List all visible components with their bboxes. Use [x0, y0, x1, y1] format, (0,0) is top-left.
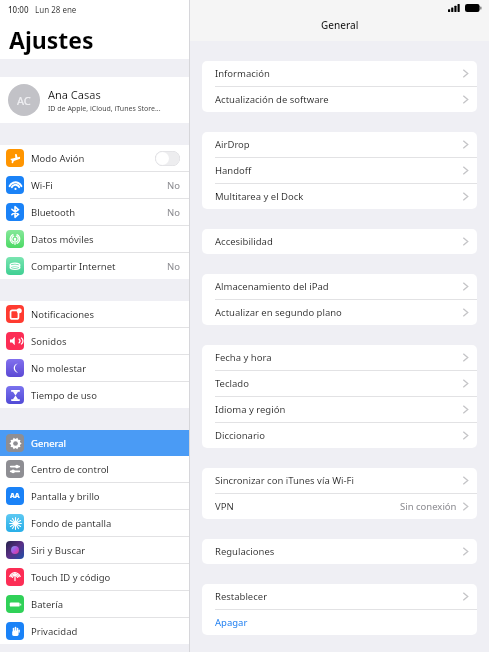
staticText: Accesibilidad — [215, 235, 463, 248]
button[interactable]: Datos móviles — [0, 226, 189, 252]
button[interactable]: Información — [202, 61, 477, 86]
staticText: Teclado — [215, 377, 463, 390]
staticText: Almacenamiento del iPad — [215, 280, 463, 293]
button[interactable]: Batería — [0, 591, 189, 617]
button[interactable]: AirDrop — [202, 132, 477, 157]
staticText: Regulaciones — [215, 545, 463, 558]
button[interactable]: Wi-Fi — [0, 172, 189, 198]
staticText: Fondo de pantalla — [31, 517, 180, 530]
button[interactable]: No molestar — [0, 355, 189, 381]
staticText: AA — [10, 491, 20, 501]
other: Batería — [465, 4, 482, 12]
staticText: No molestar — [31, 362, 180, 375]
staticText: Wi-Fi — [31, 179, 167, 192]
button[interactable]: Compartir Internet — [0, 253, 189, 279]
button[interactable]: Bluetooth — [0, 199, 189, 225]
staticText: Siri y Buscar — [31, 544, 180, 557]
staticText: No — [167, 206, 180, 219]
staticText: Ana Casas — [48, 87, 101, 102]
button[interactable]: Privacidad — [0, 618, 189, 644]
staticText: Multitarea y el Dock — [215, 190, 463, 203]
button[interactable]: Fondo de pantalla — [0, 510, 189, 536]
staticText: Compartir Internet — [31, 260, 167, 273]
button[interactable]: Tiempo de uso — [0, 382, 189, 408]
staticText: Actualizar en segundo plano — [215, 306, 463, 319]
staticText: AC — [17, 93, 31, 108]
staticText: Información — [215, 67, 463, 80]
button[interactable]: Sincronizar con iTunes vía Wi-Fi — [202, 468, 477, 493]
staticText: Sonidos — [31, 335, 180, 348]
button[interactable]: Activar Modo Avión — [155, 151, 180, 166]
button[interactable]: Apagar — [202, 610, 477, 635]
button[interactable]: AA — [0, 483, 189, 509]
staticText: ID de Apple, iCloud, iTunes Store... — [48, 104, 161, 114]
staticText: Batería — [31, 598, 180, 611]
staticText: Actualización de software — [215, 93, 463, 106]
staticText: Datos móviles — [31, 233, 180, 246]
staticText: Notificaciones — [31, 308, 180, 321]
button[interactable]: Idioma y región — [202, 397, 477, 422]
button[interactable]: Actualización de software — [202, 87, 477, 112]
button[interactable]: Fecha y hora — [202, 345, 477, 370]
staticText: Idioma y región — [215, 403, 463, 416]
other: Cobertura — [448, 4, 461, 12]
staticText: Pantalla y brillo — [31, 490, 180, 503]
button[interactable]: Sonidos — [0, 328, 189, 354]
button[interactable]: General — [0, 430, 189, 456]
staticText: 10:00 — [8, 4, 29, 15]
staticText: Touch ID y código — [31, 571, 180, 584]
staticText: Privacidad — [31, 625, 180, 638]
staticText: Ajustes — [9, 24, 94, 55]
staticText: Tiempo de uso — [31, 389, 180, 402]
staticText: Sincronizar con iTunes vía Wi-Fi — [215, 474, 463, 487]
staticText: Bluetooth — [31, 206, 167, 219]
button[interactable]: Accesibilidad — [202, 229, 477, 254]
staticText: Apagar — [215, 616, 468, 629]
staticText: Centro de control — [31, 463, 180, 476]
staticText: Modo Avión — [31, 152, 155, 165]
button[interactable]: Actualizar en segundo plano — [202, 300, 477, 325]
button[interactable]: Notificaciones — [0, 301, 189, 327]
button[interactable]: VPN — [202, 494, 477, 519]
button[interactable]: Restablecer — [202, 584, 477, 609]
staticText: General — [31, 437, 180, 450]
button[interactable]: Handoff — [202, 158, 477, 183]
staticText: Sin conexión — [400, 500, 457, 513]
staticText: Handoff — [215, 164, 463, 177]
button[interactable]: AC — [0, 77, 189, 123]
button[interactable]: Siri y Buscar — [0, 537, 189, 563]
button[interactable]: Modo Avión — [0, 145, 189, 171]
staticText: Restablecer — [215, 590, 463, 603]
button[interactable]: Centro de control — [0, 456, 189, 482]
staticText: Diccionario — [215, 429, 463, 442]
staticText: No — [167, 260, 180, 273]
button[interactable]: Diccionario — [202, 423, 477, 448]
staticText: AirDrop — [215, 138, 463, 151]
button[interactable]: Regulaciones — [202, 539, 477, 564]
button[interactable]: Touch ID y código — [0, 564, 189, 590]
button[interactable]: Multitarea y el Dock — [202, 184, 477, 209]
staticText: Fecha y hora — [215, 351, 463, 364]
button[interactable]: Almacenamiento del iPad — [202, 274, 477, 299]
staticText: General — [321, 18, 359, 32]
staticText: VPN — [215, 500, 400, 513]
staticText: No — [167, 179, 180, 192]
button[interactable]: Teclado — [202, 371, 477, 396]
staticText: Lun 28 ene — [35, 4, 77, 15]
